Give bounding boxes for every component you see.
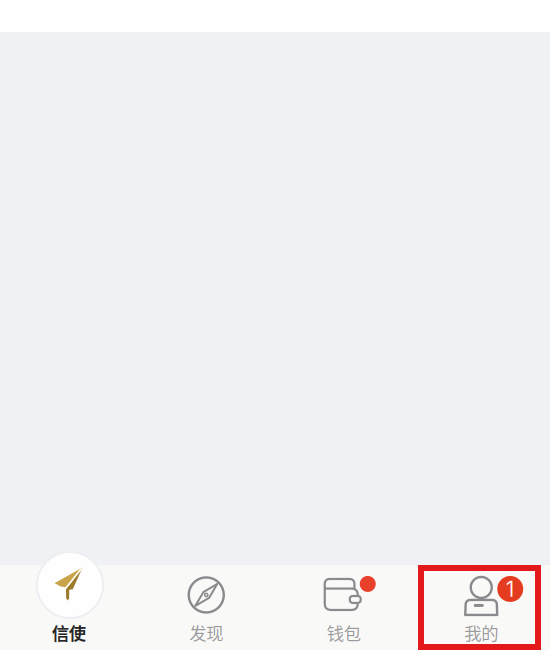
button[interactable]: 发现 <box>137 565 275 650</box>
staticText: 1 <box>506 576 515 602</box>
staticText: 钱包 <box>327 620 361 645</box>
staticText: 信使 <box>52 620 86 645</box>
button[interactable]: 钱包 <box>275 565 412 650</box>
button[interactable]: 1 <box>412 565 550 650</box>
staticText: 发现 <box>189 620 223 645</box>
button[interactable]: 信使 <box>0 565 137 650</box>
staticText: 我的 <box>464 620 498 645</box>
